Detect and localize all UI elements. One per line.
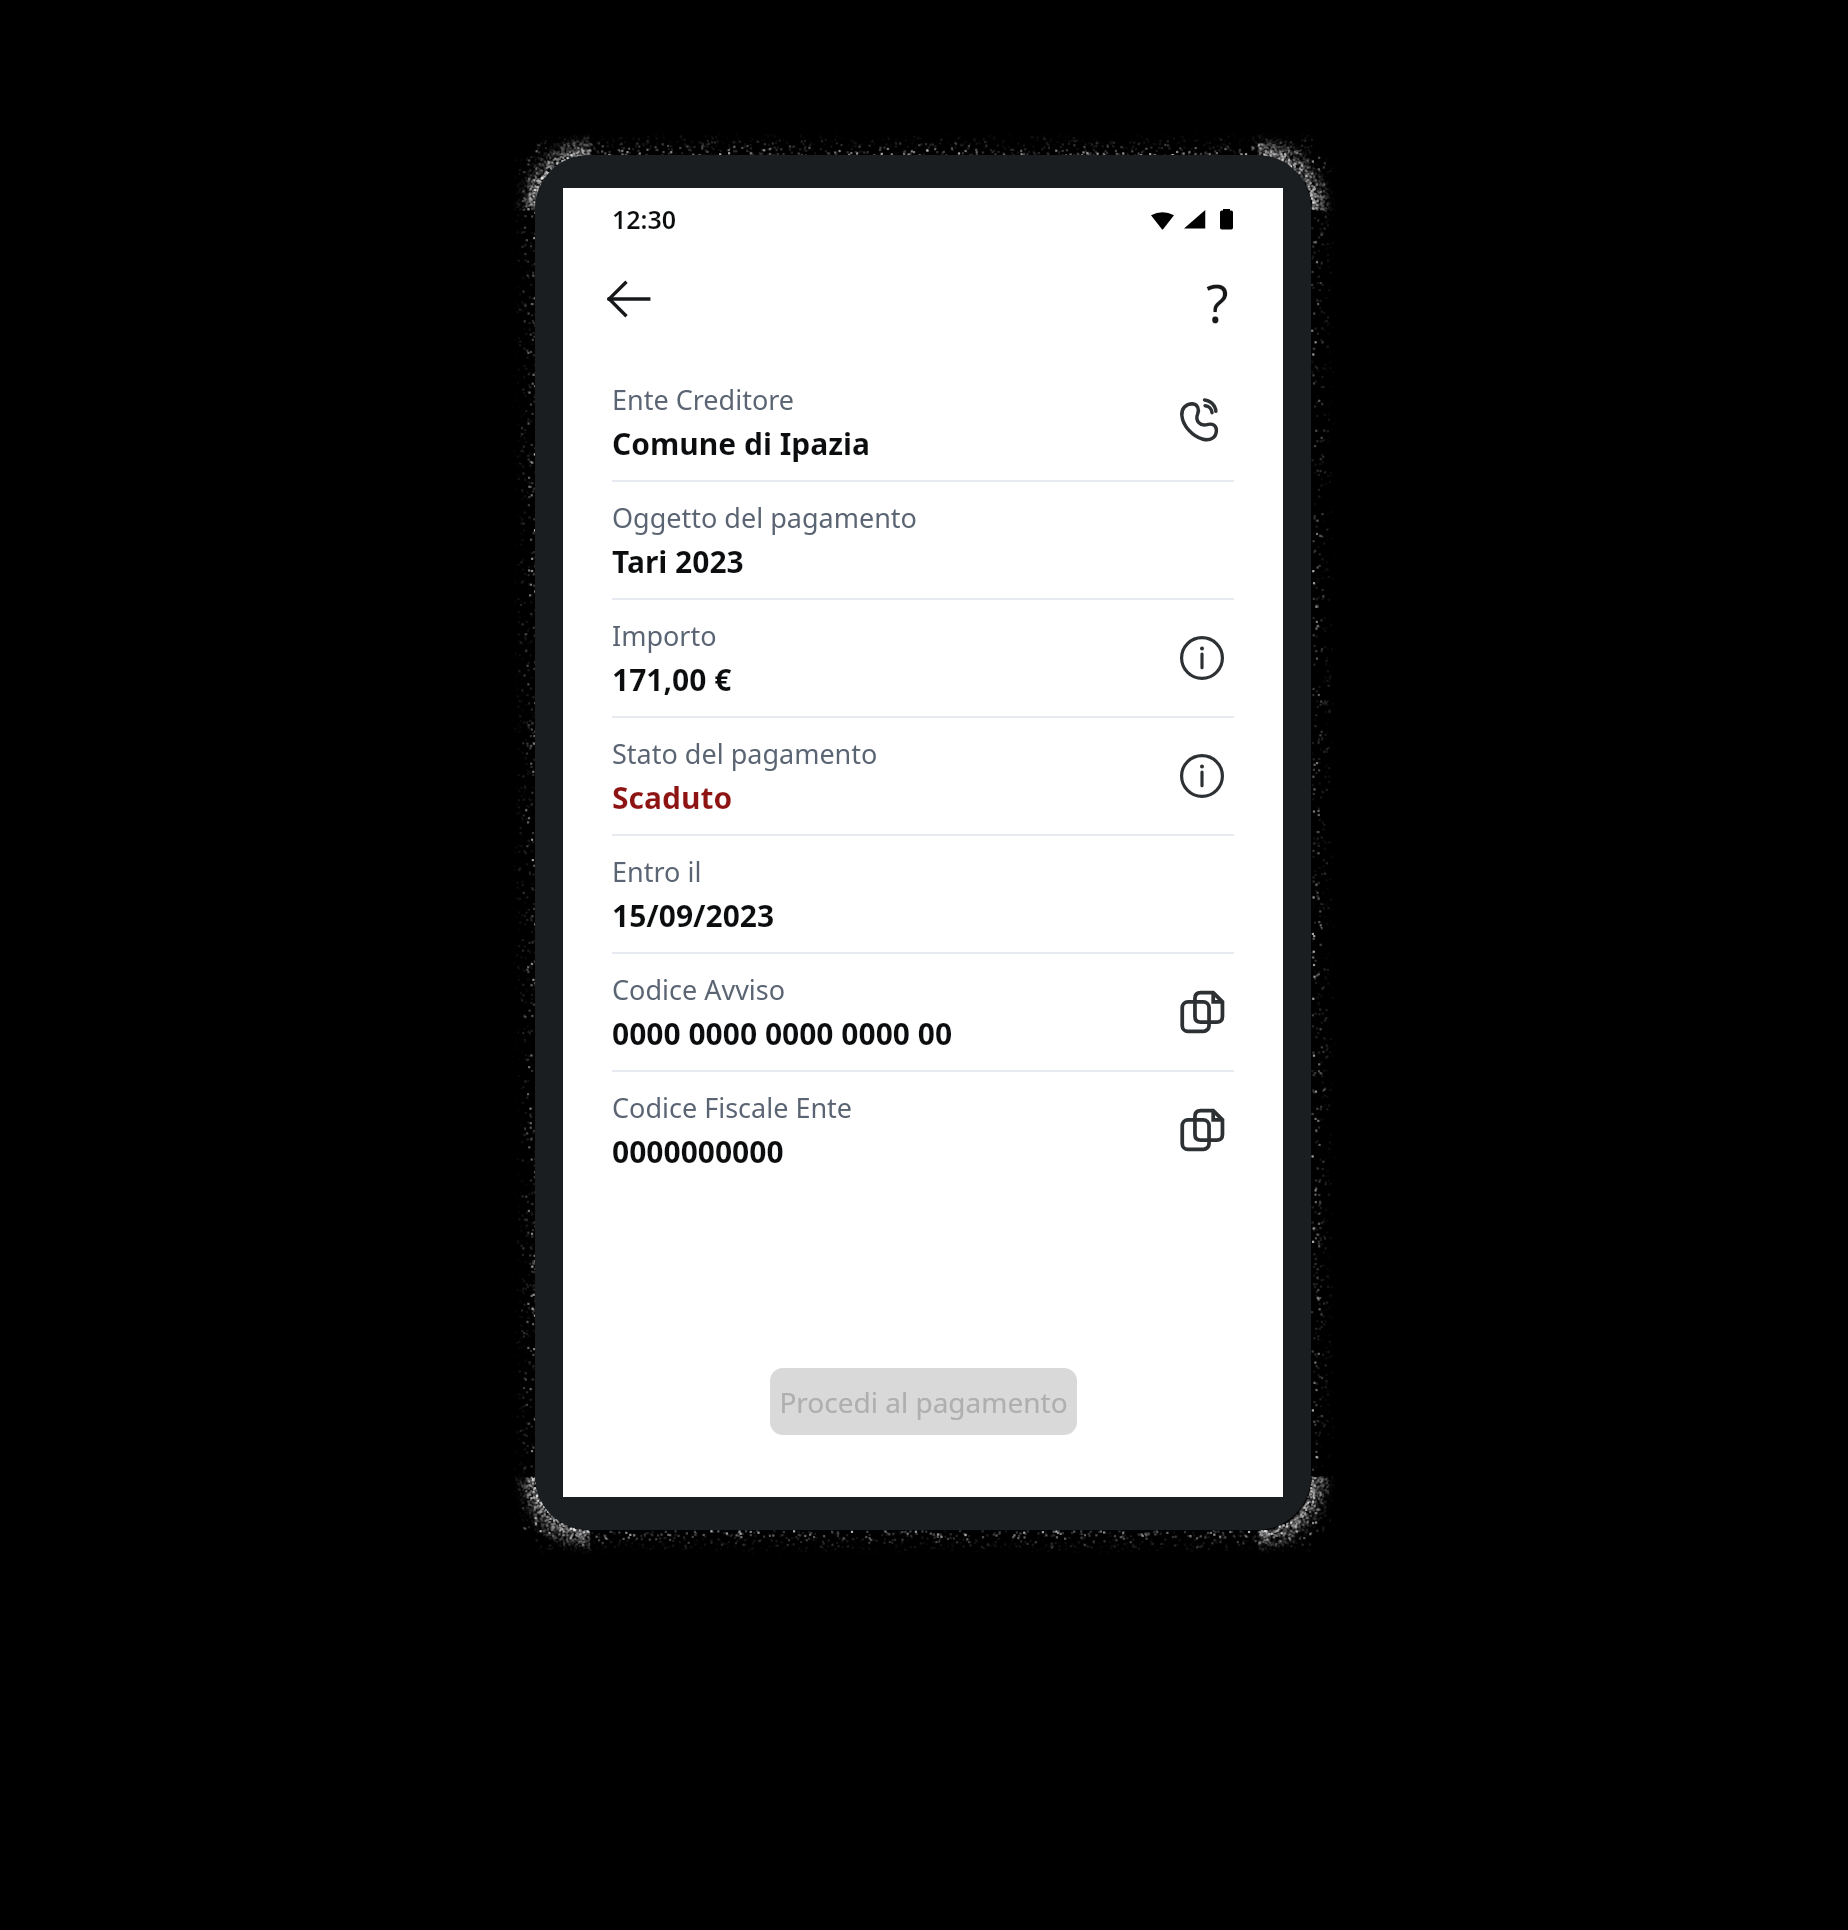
staticText: Oggetto del pagamento	[612, 499, 917, 536]
staticText: Codice Avviso	[612, 971, 786, 1008]
button[interactable]: Procedi al pagamento	[770, 1368, 1077, 1435]
button[interactable]: Entro il	[612, 836, 1234, 952]
staticText: Comune di Ipazia	[612, 423, 871, 464]
staticText: Scaduto	[612, 777, 733, 818]
staticText: Stato del pagamento	[612, 735, 878, 772]
staticText: 171,00 €	[612, 659, 732, 700]
staticText: Ente Creditore	[612, 381, 795, 418]
button[interactable]: Oggetto del pagamento	[612, 482, 1234, 598]
button[interactable]: Help	[1185, 267, 1249, 331]
button[interactable]: Codice Fiscale Ente	[612, 1072, 1234, 1188]
staticText: 12:30	[612, 202, 677, 236]
staticText: Codice Fiscale Ente	[612, 1089, 853, 1126]
staticText: 0000 0000 0000 0000 00	[612, 1013, 953, 1054]
staticText: 15/09/2023	[612, 895, 775, 936]
button[interactable]: Amount info	[1170, 626, 1234, 690]
staticText: ?	[1206, 267, 1229, 331]
button[interactable]: Stato del pagamento	[612, 718, 1234, 834]
button[interactable]: Back	[597, 267, 661, 331]
button[interactable]: Copy notice code	[1170, 980, 1234, 1044]
button[interactable]: Copy fiscal code	[1170, 1098, 1234, 1162]
button[interactable]: Ente Creditore	[612, 364, 1234, 480]
button[interactable]: Codice Avviso	[612, 954, 1234, 1070]
staticText: Tari 2023	[612, 541, 744, 582]
staticText: Importo	[612, 617, 717, 654]
staticText: Procedi al pagamento	[779, 1383, 1068, 1421]
staticText: 0000000000	[612, 1131, 784, 1172]
staticText: Entro il	[612, 853, 702, 890]
button[interactable]: Importo	[612, 600, 1234, 716]
button[interactable]: Call	[1170, 390, 1234, 454]
button[interactable]: Status info	[1170, 744, 1234, 808]
